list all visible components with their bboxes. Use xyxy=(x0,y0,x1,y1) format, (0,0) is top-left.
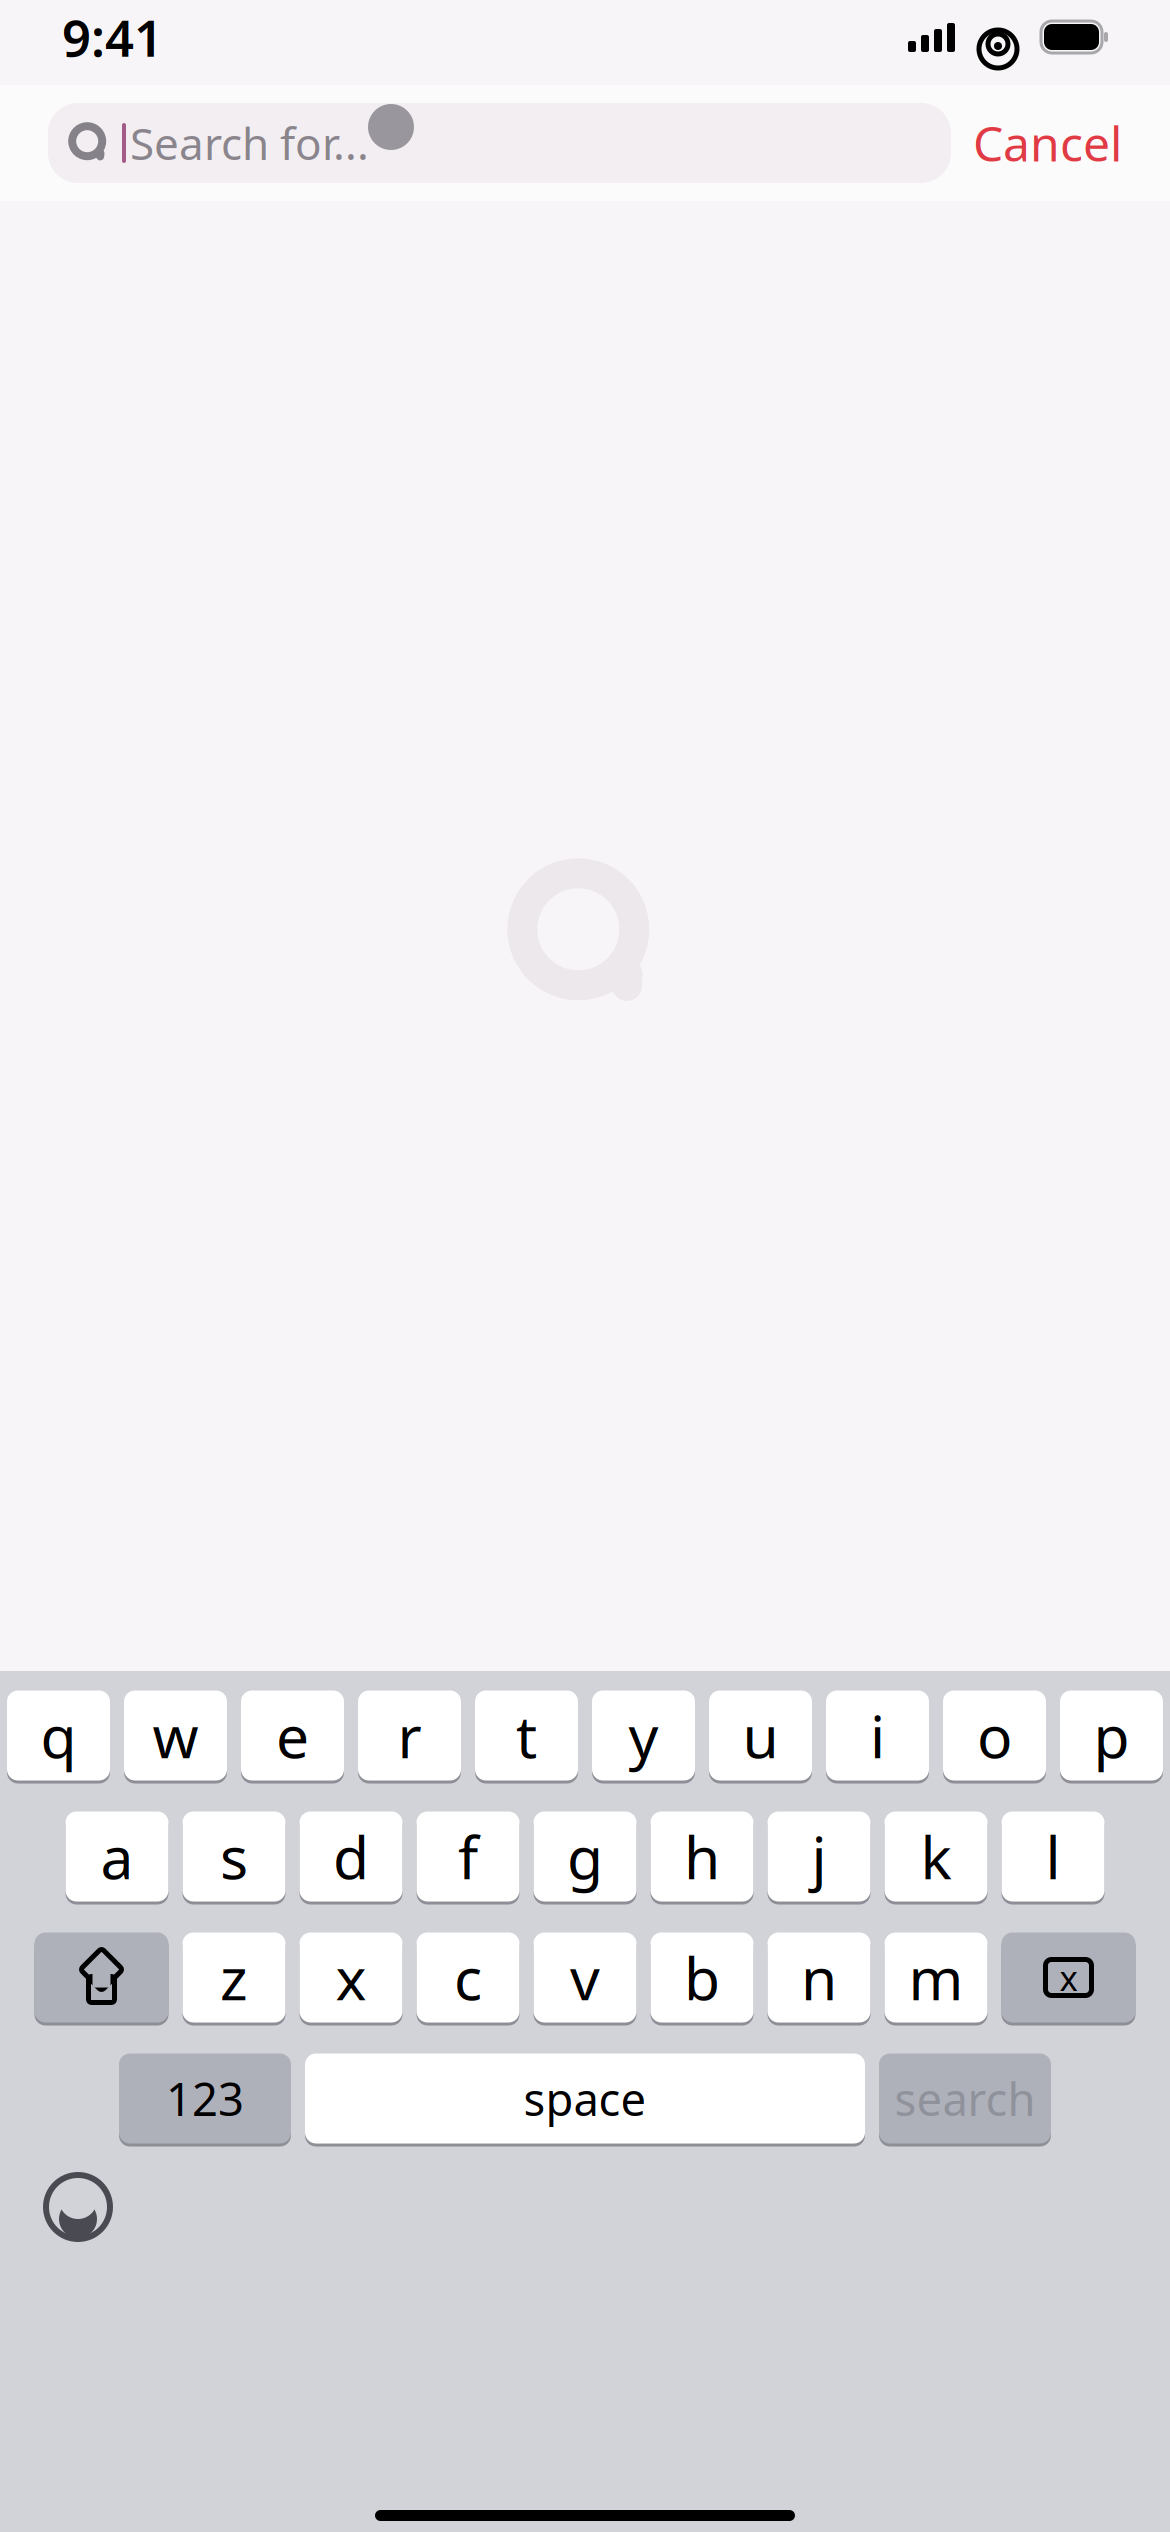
staticText: g xyxy=(567,1817,603,1895)
button[interactable]: j xyxy=(767,1810,870,1903)
staticText: search xyxy=(894,2068,1035,2129)
button[interactable]: r xyxy=(358,1689,461,1782)
staticText: r xyxy=(397,1696,421,1774)
staticText: h xyxy=(684,1817,720,1895)
staticText: x xyxy=(1059,1954,1077,2000)
staticText: q xyxy=(40,1696,76,1774)
staticText: o xyxy=(977,1696,1012,1774)
staticText: k xyxy=(920,1817,951,1895)
button[interactable]: q xyxy=(7,1689,110,1782)
button[interactable]: v xyxy=(533,1931,636,2024)
staticText: z xyxy=(220,1938,248,2016)
button[interactable]: s xyxy=(182,1810,285,1903)
staticText: f xyxy=(458,1817,478,1895)
button[interactable]: Emoji keyboard xyxy=(34,2163,122,2251)
staticText: t xyxy=(516,1696,537,1774)
button[interactable]: m xyxy=(884,1931,987,2024)
staticText: d xyxy=(333,1817,369,1895)
staticText: x xyxy=(335,1938,366,2016)
button[interactable]: search xyxy=(879,2052,1051,2145)
button[interactable]: p xyxy=(1060,1689,1163,1782)
button[interactable]: 123 xyxy=(119,2052,291,2145)
button[interactable]: f xyxy=(416,1810,519,1903)
staticText: s xyxy=(220,1817,248,1895)
button[interactable]: d xyxy=(299,1810,402,1903)
staticText: b xyxy=(684,1938,720,2016)
button[interactable]: h xyxy=(650,1810,753,1903)
button[interactable]: i xyxy=(826,1689,929,1782)
staticText: 123 xyxy=(166,2068,244,2129)
button[interactable]: c xyxy=(416,1931,519,2024)
staticText: w xyxy=(152,1696,198,1774)
staticText: i xyxy=(870,1696,885,1774)
staticText: p xyxy=(1093,1696,1129,1774)
button[interactable]: o xyxy=(943,1689,1046,1782)
staticText: Cancel xyxy=(973,111,1122,175)
button[interactable]: b xyxy=(650,1931,753,2024)
staticText: u xyxy=(742,1696,778,1774)
button[interactable]: Cancel xyxy=(951,103,1144,183)
button[interactable]: Shift xyxy=(34,1931,168,2024)
button[interactable]: a xyxy=(65,1810,168,1903)
button[interactable]: z xyxy=(182,1931,285,2024)
staticText: v xyxy=(570,1938,600,2016)
staticText: y xyxy=(628,1696,658,1774)
button[interactable]: w xyxy=(124,1689,227,1782)
button[interactable]: e xyxy=(241,1689,344,1782)
button[interactable]: y xyxy=(592,1689,695,1782)
button[interactable]: u xyxy=(709,1689,812,1782)
staticText: Search for... xyxy=(130,114,369,172)
button[interactable]: t xyxy=(475,1689,578,1782)
staticText: 9:41 xyxy=(62,3,163,71)
staticText: m xyxy=(908,1938,963,2016)
staticText: l xyxy=(1045,1817,1060,1895)
button[interactable]: l xyxy=(1001,1810,1104,1903)
button[interactable]: space xyxy=(305,2052,865,2145)
staticText: c xyxy=(454,1938,482,2016)
button[interactable]: n xyxy=(767,1931,870,2024)
staticText: space xyxy=(523,2068,646,2129)
button[interactable]: Delete xyxy=(1001,1931,1135,2024)
button[interactable]: k xyxy=(884,1810,987,1903)
button[interactable]: x xyxy=(299,1931,402,2024)
staticText: e xyxy=(276,1696,309,1774)
staticText: a xyxy=(100,1817,133,1895)
staticText: j xyxy=(811,1817,826,1895)
button[interactable]: g xyxy=(533,1810,636,1903)
staticText: n xyxy=(801,1938,837,2016)
